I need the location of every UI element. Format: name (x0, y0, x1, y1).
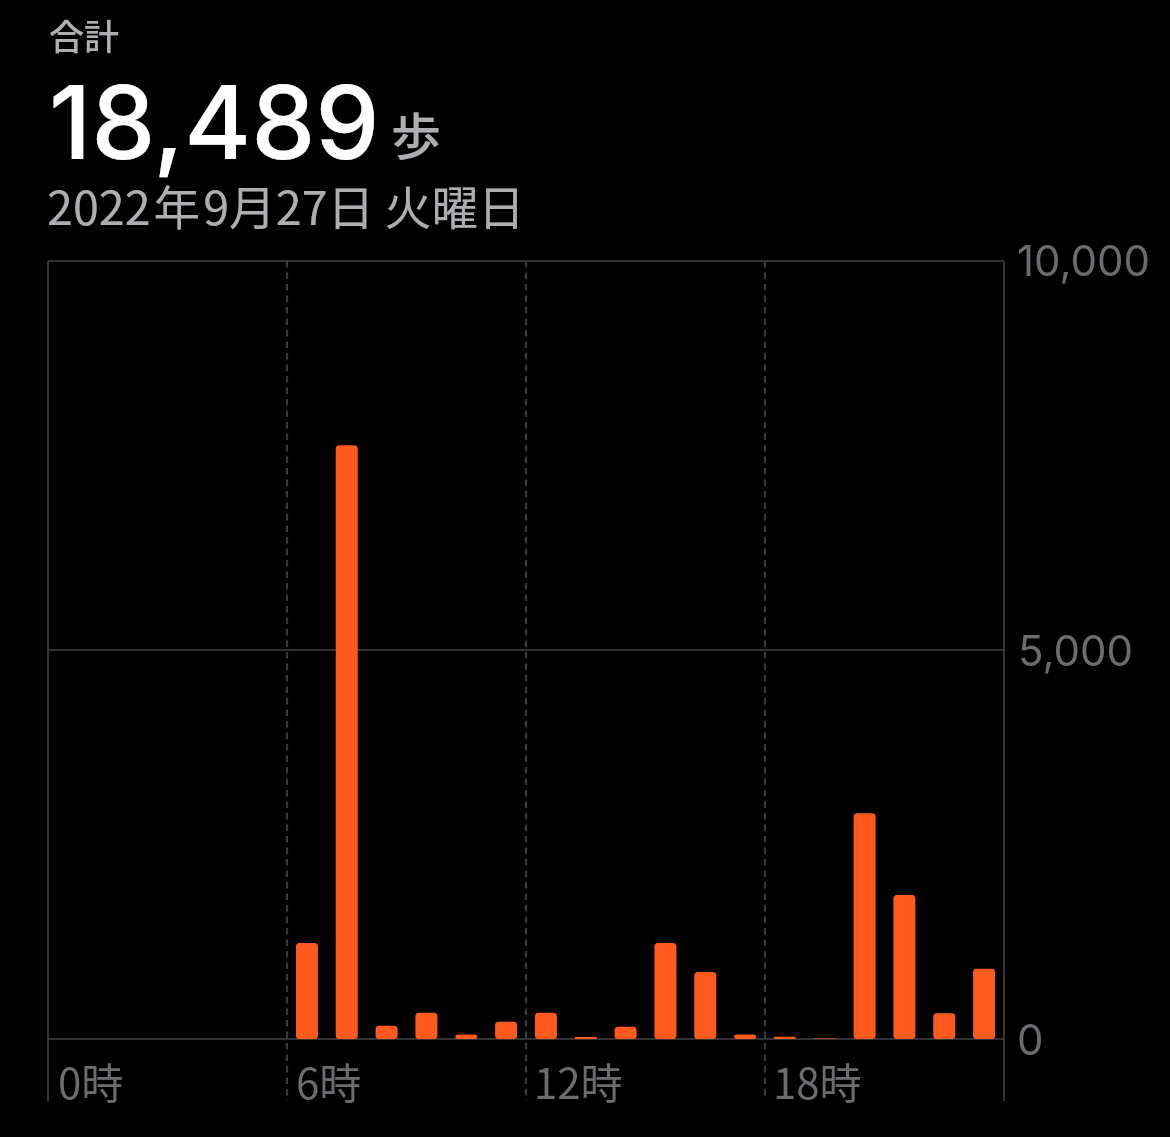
button[interactable]: 21時 1851歩 (885, 261, 925, 1039)
button[interactable]: 14時 157歩 (606, 261, 646, 1039)
button[interactable]: 9時 338歩 (407, 261, 447, 1039)
staticText: 5,000 (1018, 625, 1133, 676)
staticText: 10,000 (1017, 235, 1151, 286)
staticText: 6時 (296, 1050, 362, 1111)
button[interactable]: 13時 26歩 (566, 261, 606, 1039)
button[interactable]: 18時 30歩 (765, 261, 805, 1039)
button[interactable]: 19時 8歩 (805, 261, 845, 1039)
button[interactable]: 4時 0歩 (207, 261, 247, 1039)
button[interactable]: 10時 59歩 (446, 261, 486, 1039)
button[interactable]: 7時 7632歩 (327, 261, 367, 1039)
button[interactable]: 23時 902歩 (964, 261, 1004, 1039)
button[interactable]: 16時 861歩 (685, 261, 725, 1039)
staticText: 2022 年 9月27日 火曜日 (47, 171, 525, 239)
button[interactable]: 20時 2903歩 (845, 261, 885, 1039)
staticText: 18時 (773, 1050, 862, 1111)
button[interactable]: 2時 0歩 (128, 261, 168, 1039)
button[interactable]: 5時 0歩 (247, 261, 287, 1039)
button[interactable]: 0時 0歩 (48, 261, 88, 1039)
button[interactable]: 12時 338歩 (526, 261, 566, 1039)
button[interactable]: 17時 57歩 (725, 261, 765, 1039)
staticText: 12時 (534, 1050, 623, 1111)
staticText: 歩 (391, 97, 441, 169)
staticText: 0時 (58, 1050, 124, 1111)
button[interactable] (40, 0, 1020, 240)
button[interactable]: 3時 0歩 (168, 261, 208, 1039)
button[interactable]: 1時 0歩 (88, 261, 128, 1039)
button[interactable]: 15時 1234歩 (646, 261, 686, 1039)
staticText: 18,489 (49, 60, 380, 183)
button[interactable]: 11時 222歩 (486, 261, 526, 1039)
button[interactable]: 8時 171歩 (367, 261, 407, 1039)
staticText: 合計 (49, 9, 120, 60)
staticText: 0 (1017, 1014, 1044, 1065)
button[interactable]: Hourly step count chart (48, 261, 1004, 1101)
button[interactable]: 6時 1233歩 (287, 261, 327, 1039)
button[interactable]: 22時 332歩 (924, 261, 964, 1039)
